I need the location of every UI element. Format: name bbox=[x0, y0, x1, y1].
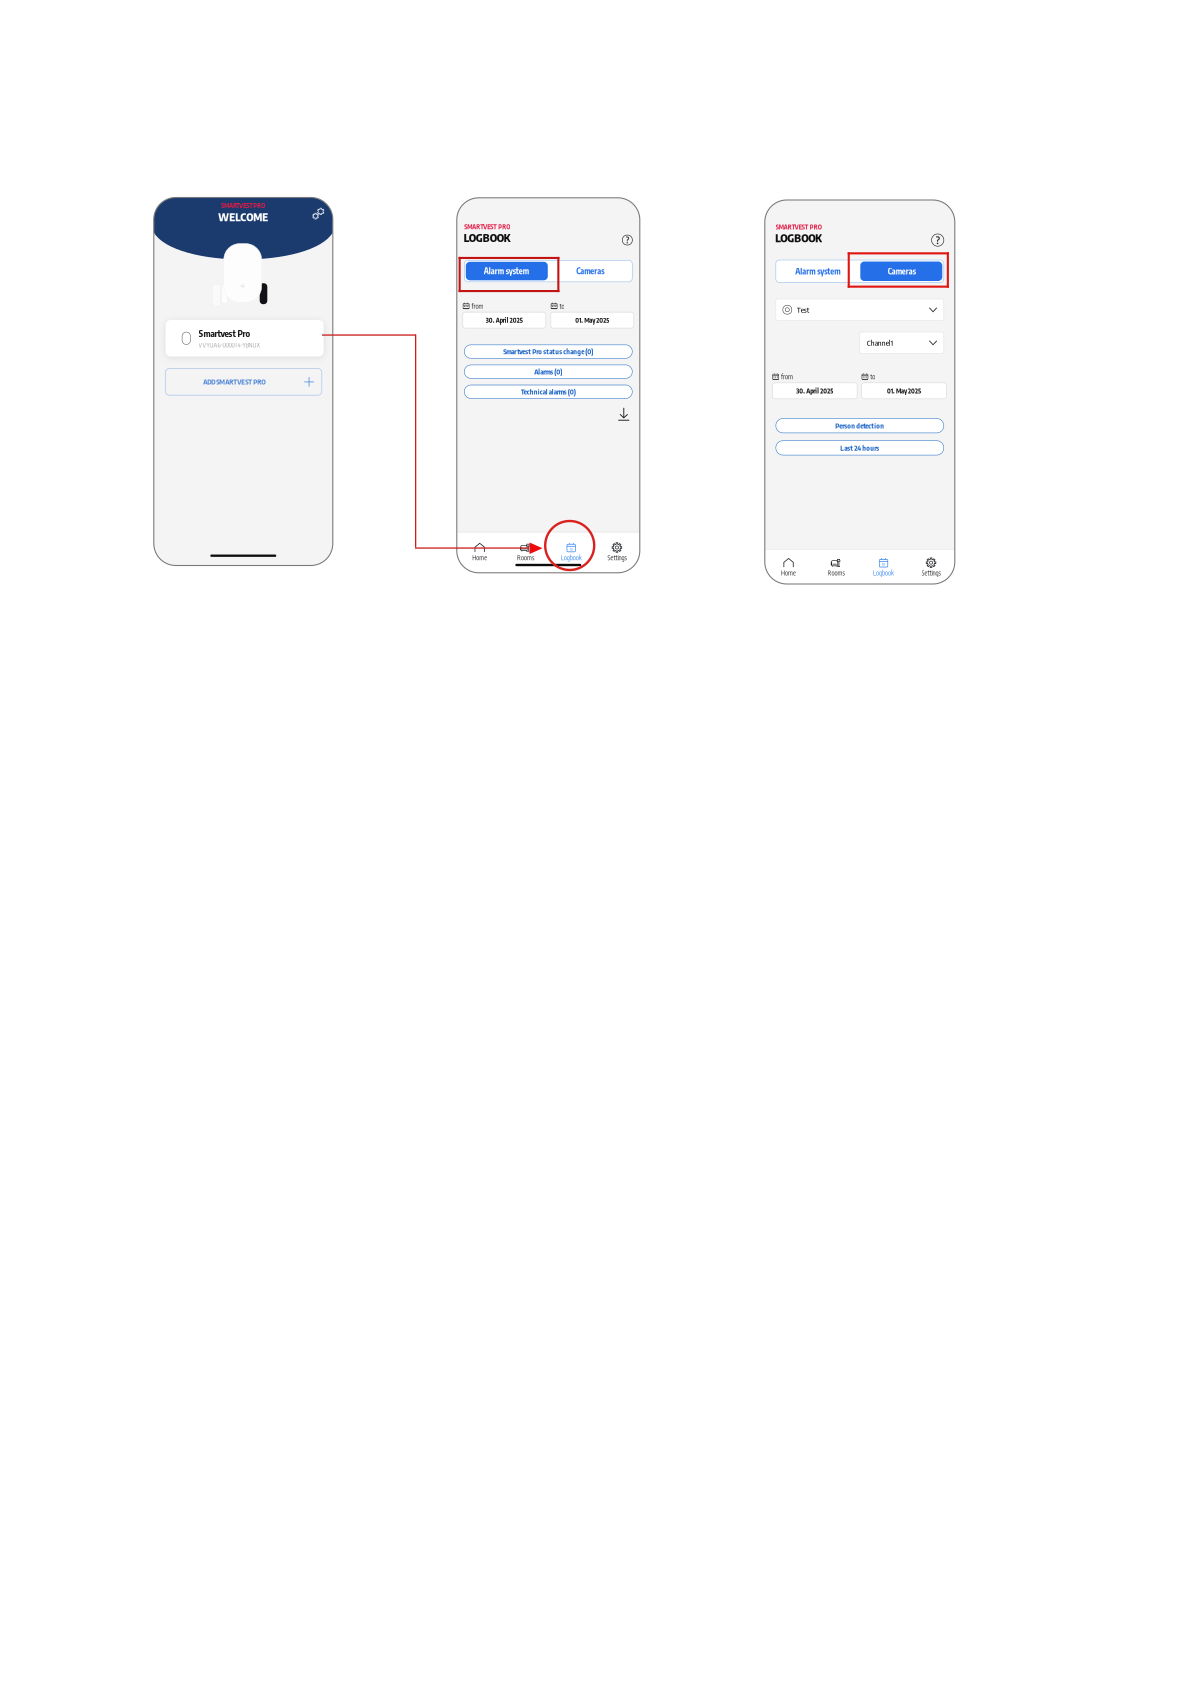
staticText: 10 bbox=[570, 547, 573, 551]
button[interactable]: 30. April 2025 bbox=[772, 383, 857, 399]
staticText: Cameras bbox=[576, 266, 604, 276]
staticText: 01. May 2025 bbox=[575, 316, 609, 324]
staticText: Test bbox=[797, 305, 809, 314]
staticText: Home bbox=[781, 569, 796, 577]
button[interactable]: Settings bbox=[594, 532, 640, 572]
staticText: Logbook bbox=[873, 569, 894, 577]
button[interactable]: Home bbox=[765, 550, 812, 585]
staticText: Cameras bbox=[888, 266, 916, 276]
staticText: ? bbox=[936, 234, 940, 246]
staticText: Person detection bbox=[835, 421, 884, 430]
button[interactable]: Rooms bbox=[503, 532, 548, 572]
staticText: Rooms bbox=[517, 554, 534, 562]
button[interactable]: Settings bbox=[312, 207, 325, 220]
staticText: 10 bbox=[882, 562, 885, 567]
button[interactable]: 01. May 2025 bbox=[862, 383, 946, 399]
staticText: Rooms bbox=[827, 569, 844, 577]
staticText: SMARTVEST PRO bbox=[776, 223, 822, 231]
staticText: from bbox=[781, 372, 793, 381]
button[interactable]: Channel1 bbox=[860, 332, 944, 353]
button[interactable]: Test bbox=[776, 299, 944, 320]
button[interactable]: Alarms (0) bbox=[464, 365, 632, 378]
button[interactable]: Alarm system bbox=[464, 260, 548, 282]
staticText: Channel1 bbox=[867, 338, 893, 347]
button[interactable]: Smartvest Pro bbox=[166, 320, 324, 356]
button[interactable]: Technical alarms (0) bbox=[464, 385, 632, 398]
staticText: Home bbox=[472, 554, 487, 562]
button[interactable]: Home bbox=[457, 532, 503, 572]
staticText: 30. April 2025 bbox=[796, 387, 833, 395]
staticText: Logbook bbox=[561, 554, 582, 562]
button[interactable]: Person detection bbox=[776, 418, 944, 433]
staticText: from bbox=[471, 302, 483, 310]
staticText: 30. April 2025 bbox=[486, 316, 523, 324]
staticText: Smartvest Pro status change (0) bbox=[503, 347, 593, 356]
staticText: LOGBOOK bbox=[464, 231, 511, 244]
button[interactable]: Cameras bbox=[860, 260, 944, 282]
button[interactable]: 10 bbox=[860, 550, 907, 585]
staticText: WELCOME bbox=[218, 210, 268, 224]
staticText: to bbox=[870, 372, 875, 381]
staticText: SMARTVEST PRO bbox=[221, 202, 265, 209]
staticText: 01. May 2025 bbox=[887, 387, 921, 395]
staticText: Last 24 hours bbox=[840, 444, 879, 452]
staticText: Alarm system bbox=[795, 266, 840, 276]
staticText: ? bbox=[626, 235, 629, 245]
button[interactable]: Settings bbox=[907, 550, 955, 585]
button[interactable]: Download bbox=[618, 408, 629, 421]
button[interactable]: 10 bbox=[548, 532, 594, 572]
staticText: Technical alarms (0) bbox=[521, 387, 576, 396]
button[interactable]: 30. April 2025 bbox=[463, 312, 546, 328]
staticText: Alarm system bbox=[484, 266, 529, 276]
button[interactable]: Cameras bbox=[548, 260, 632, 282]
button[interactable]: Alarm system bbox=[776, 260, 860, 282]
staticText: Alarms (0) bbox=[534, 367, 562, 376]
button[interactable]: Help bbox=[621, 234, 634, 246]
staticText: Settings bbox=[921, 569, 940, 577]
staticText: Settings bbox=[607, 554, 626, 562]
button[interactable]: ADD SMARTVEST PRO bbox=[165, 368, 322, 395]
staticText: Smartvest Pro bbox=[198, 328, 250, 339]
staticText: ADD SMARTVEST PRO bbox=[203, 378, 266, 386]
button[interactable]: Rooms bbox=[812, 550, 860, 585]
button[interactable]: 01. May 2025 bbox=[551, 312, 634, 328]
button[interactable]: Smartvest Pro status change (0) bbox=[464, 345, 632, 358]
button[interactable]: Help bbox=[930, 233, 945, 247]
staticText: VVYUA6-0000T4-YBNUX bbox=[198, 341, 259, 349]
staticText: LOGBOOK bbox=[775, 231, 822, 245]
staticText: to bbox=[559, 302, 564, 310]
button[interactable]: Last 24 hours bbox=[776, 441, 944, 455]
staticText: SMARTVEST PRO bbox=[464, 223, 510, 231]
